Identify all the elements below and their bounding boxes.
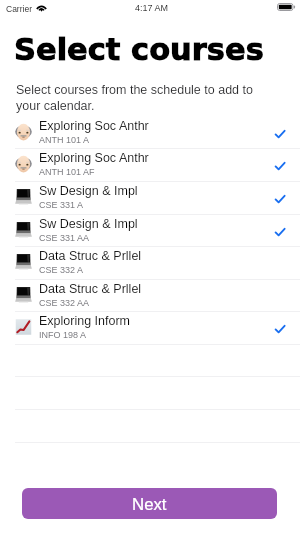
button[interactable]: Sw Design & Impl (0, 182, 300, 215)
other: Wi-Fi (36, 4, 47, 12)
staticText: Data Struc & Prllel (39, 249, 142, 263)
staticText: Select courses (14, 32, 264, 68)
staticText: Exploring Soc Anthr (39, 119, 149, 133)
staticText: INFO 198 A (39, 330, 87, 340)
button[interactable]: Data Struc & Prllel (0, 247, 300, 280)
staticText: CSE 331 AA (39, 233, 90, 243)
staticText: 4:17 AM (135, 3, 169, 13)
button[interactable]: Exploring Inform (0, 312, 300, 345)
staticText: CSE 332 A (39, 265, 84, 275)
staticText: CSE 332 AA (39, 298, 90, 308)
button[interactable]: Exploring Soc Anthr (0, 117, 300, 150)
other: Battery (277, 3, 295, 11)
button[interactable]: Next (22, 488, 277, 519)
staticText: Sw Design & Impl (39, 184, 138, 198)
staticText: Select courses from the schedule to add … (16, 83, 253, 112)
staticText: Next (132, 495, 167, 514)
button[interactable]: Data Struc & Prllel (0, 280, 300, 313)
staticText: CSE 331 A (39, 200, 84, 210)
staticText: Carrier (6, 4, 32, 13)
button[interactable]: Exploring Soc Anthr (0, 149, 300, 182)
staticText: ANTH 101 AF (39, 167, 95, 177)
button[interactable]: Sw Design & Impl (0, 215, 300, 248)
staticText: Exploring Soc Anthr (39, 151, 149, 165)
staticText: Exploring Inform (39, 314, 131, 328)
staticText: Data Struc & Prllel (39, 282, 142, 296)
staticText: Sw Design & Impl (39, 217, 138, 231)
staticText: ANTH 101 A (39, 135, 90, 145)
